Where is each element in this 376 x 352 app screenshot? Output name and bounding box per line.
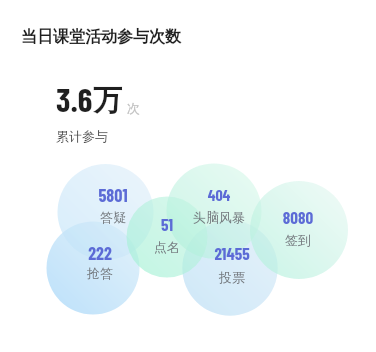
staticText: 签到	[228, 232, 368, 248]
staticText: 头脑风暴	[149, 209, 289, 225]
staticText: 5801	[43, 184, 183, 206]
staticText: 抢答	[30, 265, 170, 281]
staticText: 万	[93, 82, 122, 119]
button[interactable]: 答疑 5801	[58, 164, 154, 260]
button[interactable]: 头脑风暴 404	[167, 164, 262, 259]
staticText: 当日课堂活动参与次数	[21, 27, 181, 47]
staticText: 21455	[162, 243, 302, 263]
staticText: 222	[30, 242, 170, 264]
staticText: 投票	[162, 269, 302, 285]
button[interactable]: 点名 51	[127, 197, 208, 278]
staticText: 次	[127, 100, 140, 116]
button[interactable]: 当日课堂活动参与次数	[21, 27, 181, 47]
button[interactable]: 抢答 222	[47, 222, 140, 315]
button[interactable]: 签到 8080	[250, 181, 348, 279]
button[interactable]: 投票 21455	[182, 220, 277, 315]
staticText: 3.6	[56, 79, 93, 119]
staticText: 点名	[97, 239, 237, 255]
staticText: 累计参与	[56, 128, 108, 144]
staticText: 答疑	[43, 209, 183, 225]
staticText: 404	[149, 185, 289, 204]
staticText: 51	[97, 214, 237, 234]
staticText: 8080	[228, 207, 368, 227]
